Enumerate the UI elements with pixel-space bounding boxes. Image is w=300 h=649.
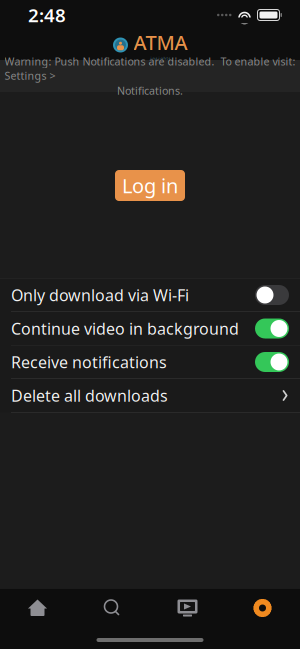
button[interactable]: Videos <box>150 588 225 627</box>
button[interactable]: Settings <box>225 588 300 627</box>
button[interactable]: Receive notifications <box>0 345 300 378</box>
staticText: Delete all downloads <box>11 385 168 406</box>
button[interactable]: Search <box>75 588 150 627</box>
staticText: Notifications. <box>117 84 183 98</box>
button[interactable]: Log in <box>115 170 185 201</box>
staticText: Warning: Push Notifications are disabled… <box>4 54 295 83</box>
button[interactable]: Delete all downloads <box>0 379 300 412</box>
staticText: Only download via Wi-Fi <box>11 284 189 306</box>
button[interactable]: Only download via Wi-Fi <box>0 278 300 311</box>
staticText: i n s i g h t s <box>150 56 170 61</box>
staticText: Log in <box>122 172 178 199</box>
button[interactable]: Home <box>0 588 75 627</box>
button[interactable]: Continue video in background <box>0 312 300 345</box>
staticText: Continue video in background <box>11 318 239 339</box>
staticText: ATMA <box>133 29 187 56</box>
staticText: 2:48 <box>28 3 66 27</box>
staticText: Receive notifications <box>11 351 167 373</box>
